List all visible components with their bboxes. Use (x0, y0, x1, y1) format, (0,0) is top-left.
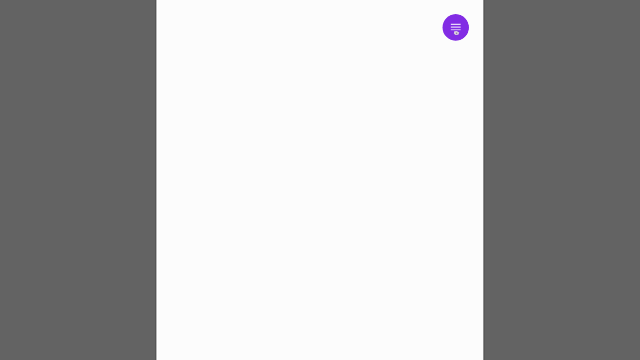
button[interactable]: Menu (442, 14, 469, 41)
